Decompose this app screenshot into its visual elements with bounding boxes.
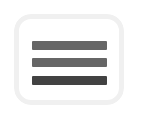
button[interactable]: Menu — [14, 14, 124, 105]
button[interactable]: Third item — [32, 76, 107, 85]
